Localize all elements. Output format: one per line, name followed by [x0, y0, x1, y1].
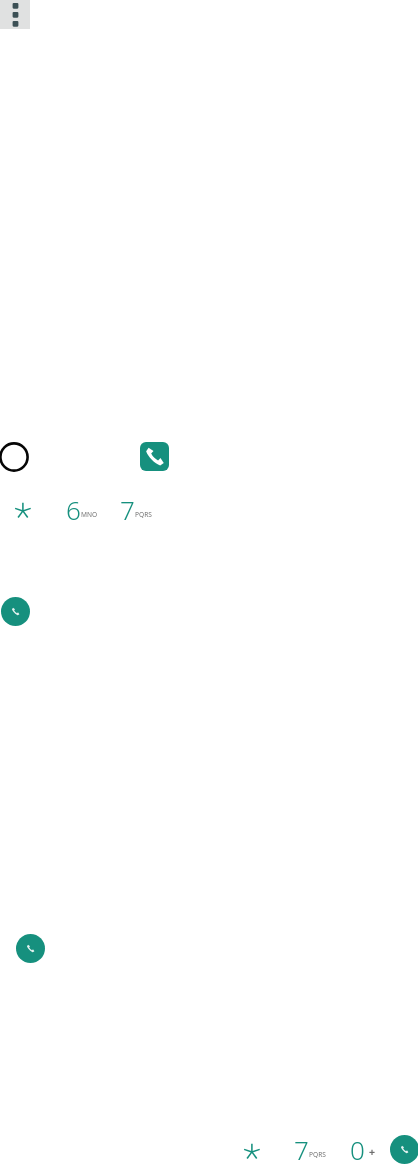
button[interactable]: Plus [366, 1144, 378, 1156]
staticText: 7 [120, 492, 135, 527]
button[interactable]: 6 [66, 492, 98, 527]
staticText: PQRS [135, 510, 152, 519]
button[interactable]: 0 [350, 1132, 365, 1164]
button[interactable]: Call [1, 597, 30, 626]
button[interactable]: Call [390, 1135, 418, 1164]
button[interactable]: More options [0, 0, 30, 29]
button[interactable]: 7 [294, 1132, 326, 1164]
button[interactable]: Star [244, 1141, 261, 1158]
staticText: PQRS [309, 1150, 326, 1159]
staticText: MNO [81, 510, 98, 519]
button[interactable]: Voicemail [0, 442, 29, 472]
button[interactable]: Call [140, 442, 169, 471]
staticText: 0 [350, 1132, 365, 1164]
button[interactable]: Star [15, 500, 32, 517]
staticText: 6 [66, 492, 81, 527]
staticText: 7 [294, 1132, 309, 1164]
button[interactable]: 7 [120, 492, 152, 527]
button[interactable]: Call [16, 934, 45, 963]
